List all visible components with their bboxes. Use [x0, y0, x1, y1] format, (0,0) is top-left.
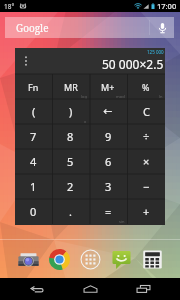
- button[interactable]: 2: [52, 174, 89, 199]
- staticText: 5: [67, 154, 74, 169]
- button[interactable]: Recents: [117, 278, 170, 300]
- button[interactable]: 8: [52, 124, 89, 149]
- button[interactable]: M+: [89, 74, 127, 99]
- staticText: (: [32, 104, 36, 119]
- staticText: ×: [143, 154, 150, 169]
- staticText: Fn: [28, 81, 39, 93]
- staticText: .: [69, 204, 72, 219]
- staticText: mod: [116, 94, 125, 99]
- staticText: log: [81, 94, 87, 99]
- button[interactable]: MR: [52, 74, 89, 99]
- staticText: 50 000×2.5: [102, 56, 164, 72]
- button[interactable]: −: [127, 174, 165, 199]
- staticText: =: [105, 204, 112, 219]
- button[interactable]: (: [15, 99, 52, 124]
- button[interactable]: 3: [89, 174, 127, 199]
- button[interactable]: Voice search: [150, 17, 174, 38]
- button[interactable]: More options: [21, 54, 31, 68]
- button[interactable]: 1: [15, 174, 52, 199]
- button[interactable]: Back: [11, 278, 64, 300]
- button[interactable]: 6: [89, 149, 127, 174]
- button[interactable]: 5: [52, 149, 89, 174]
- staticText: 9: [105, 129, 112, 144]
- staticText: MR: [64, 81, 78, 93]
- staticText: ln: [159, 94, 163, 99]
- button[interactable]: Google: [5, 17, 174, 38]
- staticText: −: [143, 179, 150, 194]
- staticText: x: [84, 119, 87, 124]
- button[interactable]: 9: [89, 124, 127, 149]
- staticText: Google: [16, 21, 49, 35]
- button[interactable]: Calculator: [137, 246, 168, 272]
- staticText: 17:00: [157, 1, 177, 11]
- button[interactable]: 4: [15, 149, 52, 174]
- staticText: %: [142, 81, 150, 93]
- button[interactable]: 7: [15, 124, 52, 149]
- button[interactable]: All apps: [75, 246, 106, 272]
- staticText: ←: [103, 105, 113, 118]
- button[interactable]: Camera: [12, 246, 44, 272]
- staticText: 125 000: [147, 49, 164, 55]
- button[interactable]: ←: [89, 99, 127, 124]
- staticText: sin: [119, 219, 125, 224]
- staticText: 2: [67, 179, 74, 194]
- staticText: +: [143, 204, 150, 219]
- button[interactable]: %: [127, 74, 165, 99]
- staticText: 3: [105, 179, 112, 194]
- staticText: ÷: [143, 129, 150, 144]
- button[interactable]: ÷: [127, 124, 165, 149]
- staticText: 4: [30, 154, 37, 169]
- button[interactable]: ): [52, 99, 89, 124]
- button[interactable]: .: [52, 199, 89, 224]
- staticText: M+: [101, 81, 115, 93]
- staticText: C: [143, 104, 150, 119]
- staticText: 18°: [4, 2, 15, 11]
- button[interactable]: 0: [15, 199, 52, 224]
- button[interactable]: +: [127, 199, 165, 224]
- button[interactable]: Messaging: [106, 246, 137, 272]
- staticText: 7: [30, 129, 37, 144]
- staticText: 6: [105, 154, 112, 169]
- staticText: 8: [67, 129, 74, 144]
- button[interactable]: Home: [64, 278, 117, 300]
- button[interactable]: C: [127, 99, 165, 124]
- button[interactable]: Fn: [15, 74, 52, 99]
- staticText: ): [69, 104, 73, 119]
- button[interactable]: Chrome: [44, 246, 75, 272]
- button[interactable]: ×: [127, 149, 165, 174]
- button[interactable]: =: [89, 199, 127, 224]
- staticText: 0: [30, 204, 37, 219]
- staticText: 1: [30, 179, 37, 194]
